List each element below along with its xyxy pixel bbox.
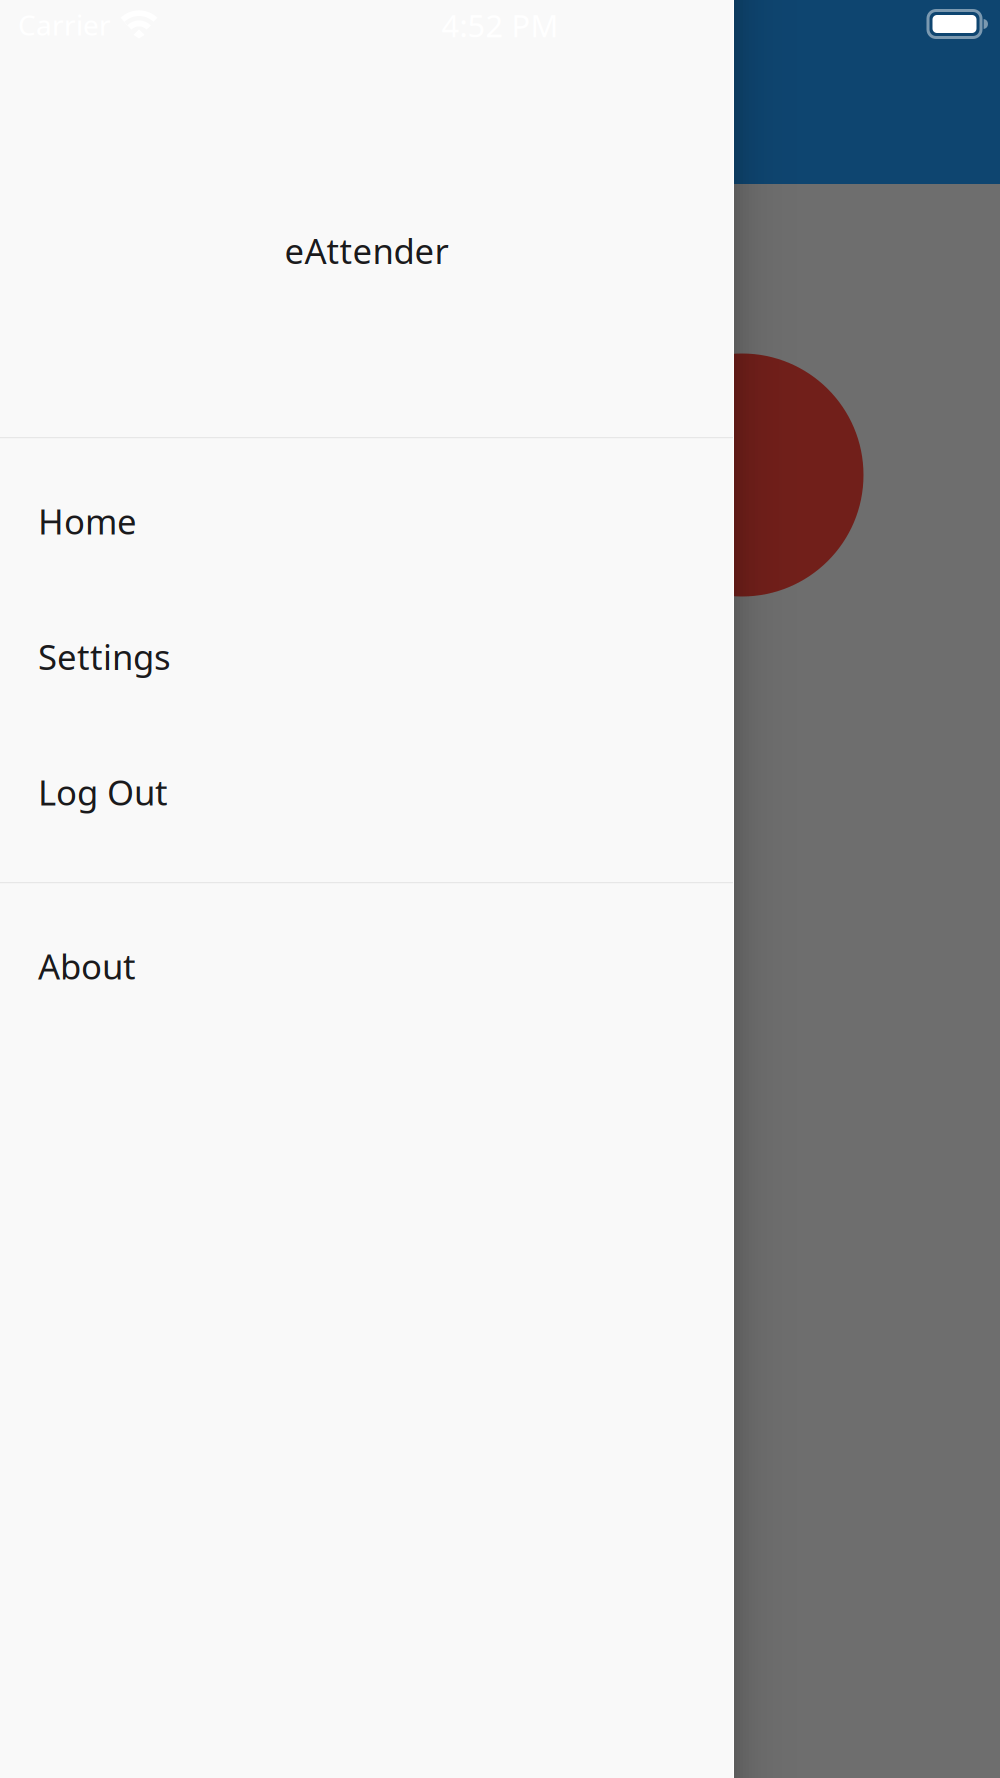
staticText: Settings xyxy=(38,633,171,679)
button[interactable]: Settings xyxy=(0,589,733,724)
button[interactable]: About xyxy=(0,898,733,1034)
staticText: Home xyxy=(38,498,137,544)
button[interactable]: Close menu xyxy=(0,0,1000,1778)
staticText: eAttender xyxy=(284,227,448,273)
staticText: About xyxy=(38,943,136,989)
staticText: Log Out xyxy=(38,769,168,815)
button[interactable]: Home xyxy=(0,453,733,589)
button[interactable]: Log Out xyxy=(0,724,733,860)
